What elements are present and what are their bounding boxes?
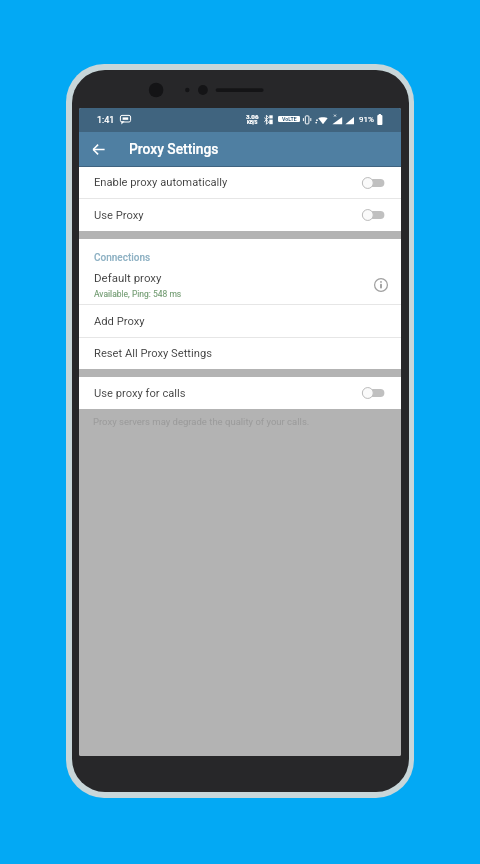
button[interactable]: Use proxy for calls: [79, 377, 401, 409]
staticText: Enable proxy automatically: [94, 176, 362, 189]
button[interactable]: Connections: [79, 239, 401, 304]
button[interactable]: Back: [79, 132, 117, 166]
staticText: VoLTE: [282, 116, 297, 122]
button[interactable]: Toggle: [362, 175, 386, 191]
staticText: Use Proxy: [94, 209, 362, 222]
staticText: 91%: [359, 115, 374, 124]
button[interactable]: Info: [372, 276, 390, 294]
staticText: Proxy servers may degrade the quality of…: [93, 416, 310, 427]
button[interactable]: Enable proxy automatically: [79, 167, 401, 198]
button[interactable]: Toggle: [362, 207, 386, 223]
button[interactable]: Reset All Proxy Settings: [79, 338, 401, 369]
staticText: 3.06: [246, 113, 259, 120]
staticText: 1:41: [97, 115, 115, 126]
button[interactable]: Use Proxy: [79, 199, 401, 231]
button[interactable]: Add Proxy: [79, 305, 401, 337]
staticText: Available, Ping: 548 ms: [94, 289, 182, 299]
staticText: Default proxy: [94, 271, 162, 284]
staticText: Add Proxy: [94, 315, 401, 328]
staticText: Proxy Settings: [129, 141, 219, 157]
staticText: KB/S: [247, 120, 258, 125]
staticText: Use proxy for calls: [94, 387, 362, 400]
staticText: Reset All Proxy Settings: [94, 347, 401, 360]
staticText: Connections: [94, 252, 151, 264]
button[interactable]: Toggle: [362, 385, 386, 401]
